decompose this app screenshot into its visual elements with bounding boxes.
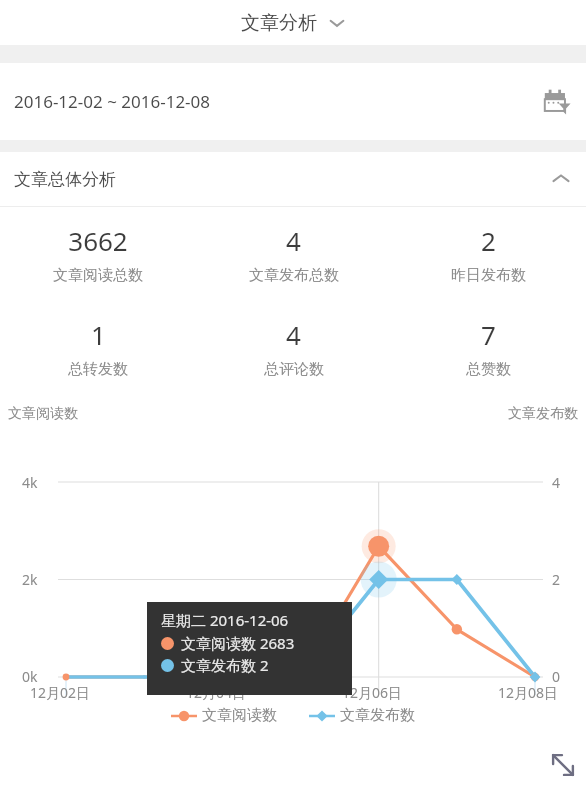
staticText: 文章发布数 — [340, 706, 415, 725]
other: Select date range — [538, 84, 574, 120]
staticText: 文章发布数 2 — [181, 655, 269, 675]
button[interactable]: 7 — [391, 301, 586, 395]
button[interactable]: 文章发布数 — [307, 702, 417, 729]
button[interactable]: 1 — [0, 301, 196, 395]
staticText: 4 — [286, 223, 301, 258]
staticText: 文章分析 — [241, 11, 317, 35]
staticText: 4 — [286, 317, 301, 352]
staticText: 文章阅读总数 — [53, 266, 143, 285]
button[interactable]: 文章总体分析 — [0, 152, 586, 206]
staticText: 4 — [552, 473, 561, 492]
staticText: 总转发数 — [68, 360, 128, 379]
staticText: 文章阅读数 — [202, 706, 277, 725]
staticText: 3662 — [68, 223, 128, 258]
staticText: 7 — [481, 317, 496, 352]
staticText: 文章总体分析 — [14, 169, 116, 190]
staticText: 2k — [22, 570, 38, 589]
button[interactable]: 3662 — [0, 207, 196, 301]
staticText: 0 — [552, 667, 561, 686]
staticText: 文章阅读数 2683 — [181, 633, 295, 653]
staticText: 星期二 2016-12-06 — [161, 610, 289, 630]
staticText: 文章阅读数 — [8, 405, 78, 423]
button[interactable]: 文章分析 — [0, 0, 586, 45]
staticText: 总评论数 — [264, 360, 324, 379]
staticText: 总赞数 — [466, 360, 511, 379]
staticText: 0k — [22, 667, 38, 686]
button[interactable]: 2016-12-02 ~ 2016-12-08 — [0, 63, 586, 140]
staticText: 1 — [91, 317, 106, 352]
staticText: 2 — [481, 223, 496, 258]
staticText: 2016-12-02 ~ 2016-12-08 — [14, 90, 211, 113]
button[interactable]: 文章阅读数 — [169, 702, 279, 729]
button[interactable]: 4 — [196, 301, 391, 395]
staticText: 昨日发布数 — [451, 266, 526, 285]
staticText: 2 — [552, 570, 561, 589]
button[interactable]: 2 — [391, 207, 586, 301]
staticText: 12月08日 — [498, 683, 559, 702]
button[interactable]: 4 — [196, 207, 391, 301]
staticText: 4k — [22, 473, 38, 492]
staticText: 12月02日 — [30, 683, 91, 702]
staticText: 文章发布数 — [508, 405, 578, 423]
staticText: 文章发布总数 — [249, 266, 339, 285]
staticText: 12月06日 — [342, 683, 403, 702]
staticText: 12月04日 — [186, 683, 247, 702]
button[interactable]: Expand chart — [540, 742, 586, 788]
